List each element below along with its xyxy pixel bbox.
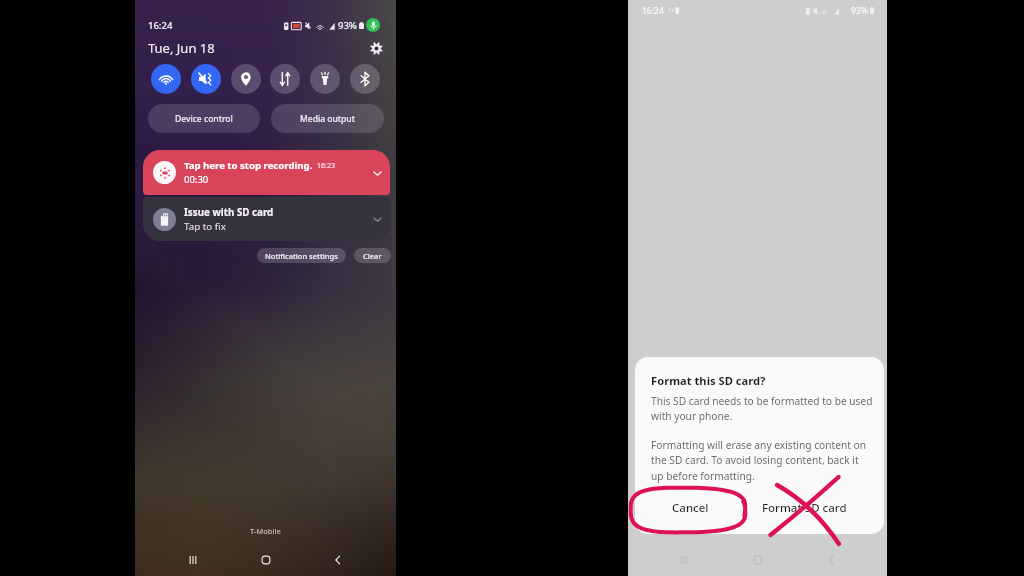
staticText: Tap here to stop recording. <box>184 159 313 172</box>
staticText: Media output <box>300 113 355 125</box>
staticText: Tap to fix <box>184 220 226 233</box>
staticText: Format this SD card? <box>651 373 766 388</box>
button[interactable]: Recents <box>176 544 210 576</box>
button[interactable]: Format SD card <box>747 494 862 522</box>
staticText: Cancel <box>672 500 709 516</box>
button[interactable]: Tap here to stop recording. <box>143 150 390 195</box>
staticText: Clear <box>363 251 382 261</box>
button[interactable]: Expand notification <box>369 211 385 227</box>
button[interactable]: Device control <box>148 104 260 133</box>
staticText: 16:23 <box>317 161 335 171</box>
staticText: Notification settings <box>265 251 338 261</box>
button[interactable]: Settings <box>366 38 386 58</box>
staticText: 00:30 <box>184 173 209 186</box>
button[interactable]: Media output <box>271 104 384 133</box>
button[interactable]: Back <box>815 544 849 576</box>
button[interactable]: Cancel <box>657 494 724 522</box>
staticText: Device control <box>175 113 233 125</box>
staticText: 93% <box>851 5 868 17</box>
staticText: T-Mobile <box>250 526 281 536</box>
button[interactable]: Flashlight <box>310 64 340 94</box>
staticText: Format SD card <box>762 500 847 516</box>
button[interactable]: Notification settings <box>257 248 346 263</box>
button[interactable]: Wi-Fi <box>151 64 181 94</box>
staticText: 16:24 <box>642 5 664 17</box>
button[interactable]: Back <box>321 544 355 576</box>
staticText: Formatting will erase any existing conte… <box>651 438 867 483</box>
staticText: 16:24 <box>148 19 173 32</box>
button[interactable]: Issue with SD card <box>143 197 390 241</box>
staticText: This SD card needs to be formatted to be… <box>651 394 876 423</box>
button[interactable]: Home <box>249 544 283 576</box>
button[interactable]: Location <box>231 64 261 94</box>
button[interactable]: Clear <box>354 248 391 263</box>
staticText: Tue, Jun 18 <box>148 39 215 57</box>
staticText: Issue with SD card <box>184 206 274 219</box>
button[interactable]: Expand notification <box>369 165 385 181</box>
staticText: 93% <box>338 19 357 32</box>
button[interactable]: Mobile data <box>270 64 300 94</box>
button[interactable]: Sound <box>191 64 221 94</box>
button[interactable]: Bluetooth <box>350 64 380 94</box>
